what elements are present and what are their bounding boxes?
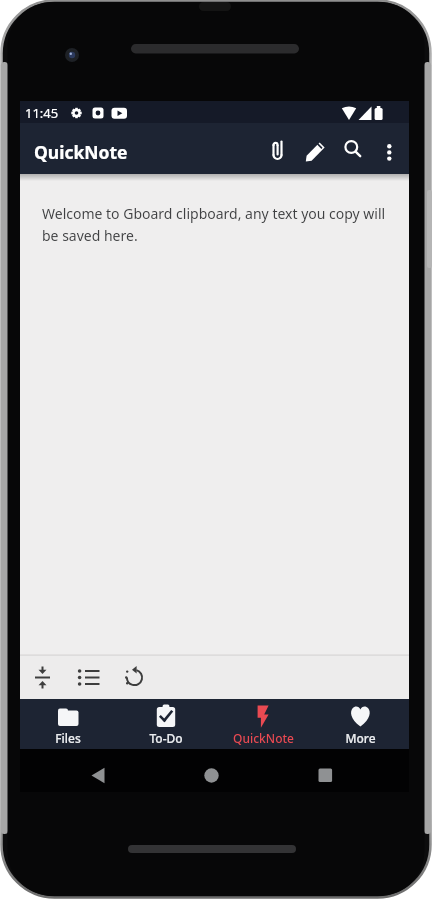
staticText: QuickNote xyxy=(34,140,128,164)
staticText: Welcome to Gboard clipboard, any text yo… xyxy=(42,204,386,223)
staticText: be saved here. xyxy=(42,226,138,245)
staticText: 11:45 xyxy=(25,104,59,122)
staticText: More xyxy=(345,730,376,746)
staticText: QuickNote xyxy=(233,730,294,746)
staticText: To-Do xyxy=(149,730,183,746)
staticText: Files xyxy=(55,730,81,746)
